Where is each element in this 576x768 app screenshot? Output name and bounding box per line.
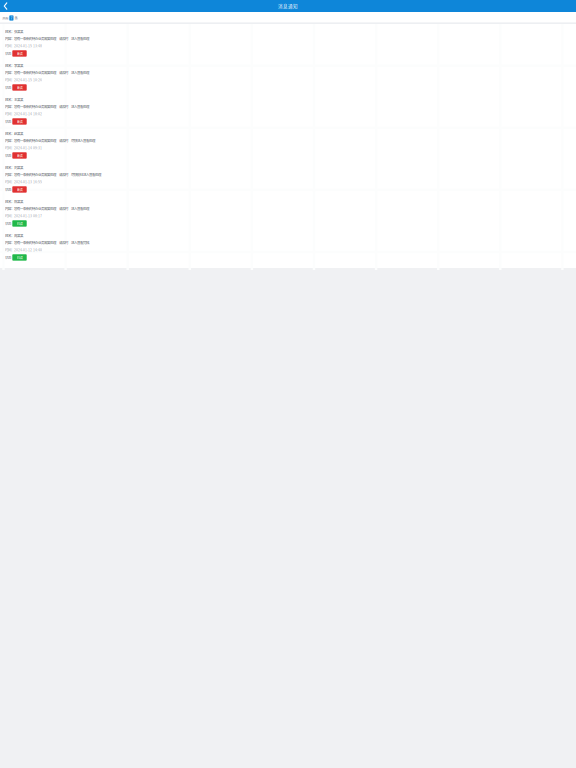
staticText: 姓名：张某某: [5, 29, 23, 34]
staticText: 内容：您有一条新的待办业务需要处理 请及时 进入查看处理: [5, 206, 89, 211]
staticText: 姓名：李某某: [5, 63, 23, 68]
button[interactable]: 姓名：李某某: [0, 61, 576, 95]
staticText: 共有: [2, 15, 8, 20]
staticText: 内容：您有一条新的待办业务需要处理 请及时 进入查看处理: [5, 36, 89, 41]
staticText: 已读: [16, 255, 22, 260]
staticText: 状态: [5, 51, 11, 56]
staticText: 未读: [16, 51, 22, 56]
staticText: 姓名：赵某某: [5, 131, 23, 136]
button[interactable]: 姓名：王某某: [0, 95, 576, 129]
staticText: 状态: [5, 119, 11, 124]
staticText: 状态: [5, 187, 11, 192]
staticText: 姓名：陈某某: [5, 199, 23, 204]
staticText: 时间：2024-01-14 09:31: [5, 145, 42, 150]
staticText: 时间：2024-01-13 08:17: [5, 213, 42, 218]
staticText: 时间：2024-01-13 16:55: [5, 179, 42, 184]
staticText: 时间：2024-01-15 10:26: [5, 77, 42, 82]
button[interactable]: 姓名：张某某: [0, 27, 576, 61]
staticText: 内容：您有一条新的待办业务需要处理 请及时 进入查看完成: [5, 240, 89, 245]
staticText: 已读: [16, 221, 22, 226]
staticText: 未读: [16, 85, 22, 90]
staticText: 姓名：王某某: [5, 97, 23, 102]
staticText: 7: [10, 15, 12, 20]
staticText: 状态: [5, 153, 11, 158]
staticText: 姓名：周某某: [5, 233, 23, 238]
staticText: 姓名：刘某某: [5, 165, 23, 170]
staticText: 内容：您有一条新的待办业务需要处理 请及时 进入查看处理: [5, 70, 89, 75]
button[interactable]: 返回: [0, 0, 14, 12]
staticText: 未读: [16, 119, 22, 124]
button[interactable]: 姓名：赵某某: [0, 129, 576, 163]
staticText: 状态: [5, 85, 11, 90]
staticText: 状态: [5, 221, 11, 226]
staticText: 时间：2024-01-14 18:02: [5, 111, 42, 116]
button[interactable]: 姓名：陈某某: [0, 197, 576, 231]
button[interactable]: 姓名：刘某某: [0, 163, 576, 197]
staticText: 时间：2024-01-12 14:40: [5, 247, 42, 252]
staticText: 内容：您有一条新的待办业务需要处理 请及时 进入查看处理: [5, 104, 89, 109]
staticText: 未读: [16, 187, 22, 192]
staticText: 条: [14, 15, 17, 20]
staticText: 消息通知: [278, 3, 298, 9]
staticText: 未读: [16, 153, 22, 158]
button[interactable]: 姓名：周某某: [0, 231, 576, 265]
staticText: 内容：您有一条新的待办业务需要处理 请及时 尽快前往进入查看处理: [5, 172, 101, 177]
staticText: 内容：您有一条新的待办业务需要处理 请及时 尽快进入查看处理: [5, 138, 95, 143]
staticText: 状态: [5, 255, 11, 260]
staticText: 时间：2024-01-15 13:48: [5, 43, 42, 48]
